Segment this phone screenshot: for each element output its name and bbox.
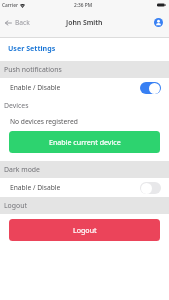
- button[interactable]: Logout: [9, 219, 160, 241]
- staticText: Enable / Disable: [10, 83, 61, 92]
- staticText: Carrier: [2, 2, 18, 9]
- staticText: No devices registered: [10, 117, 78, 126]
- button[interactable]: Enable / Disable: [0, 78, 169, 97]
- staticText: Dark mode: [4, 165, 40, 174]
- staticText: User Settings: [8, 43, 56, 53]
- staticText: Enable / Disable: [10, 183, 61, 192]
- button[interactable]: Back: [0, 14, 36, 31]
- staticText: Enable current device: [49, 137, 121, 147]
- button[interactable]: Enable current device: [9, 131, 160, 153]
- staticText: Back: [15, 18, 30, 27]
- staticText: Logout: [73, 225, 97, 235]
- staticText: Push notifications: [4, 65, 62, 74]
- button[interactable]: Enable / Disable: [0, 178, 169, 197]
- button[interactable]: Account profile: [154, 18, 163, 27]
- staticText: John Smith: [66, 18, 103, 27]
- staticText: Logout: [4, 201, 27, 210]
- staticText: Devices: [4, 101, 29, 110]
- staticText: 2:36 PM: [74, 2, 93, 9]
